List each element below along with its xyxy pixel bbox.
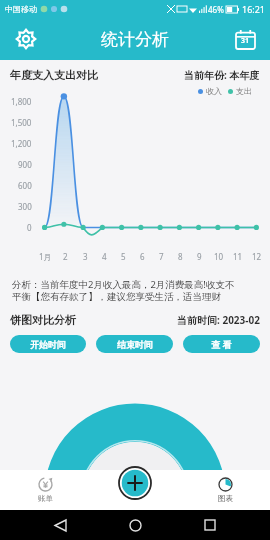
- staticText: 分析：当前年度中2月收入最高，2月消费最高!收支不: [12, 278, 235, 291]
- staticText: 图表: [218, 494, 233, 503]
- button[interactable]: 查 看: [183, 335, 260, 353]
- staticText: 12: [252, 251, 262, 262]
- button[interactable]: 结束时间: [96, 335, 173, 353]
- staticText: 结束时间: [117, 339, 153, 350]
- staticText: 当前时间: 2023-02: [177, 313, 260, 327]
- button[interactable]: Calendar: [230, 24, 260, 54]
- staticText: 1,800: [11, 96, 32, 107]
- staticText: 开始时间: [30, 339, 66, 350]
- staticText: 46%: [208, 4, 224, 15]
- staticText: 11: [233, 251, 243, 262]
- staticText: 1,500: [11, 117, 32, 128]
- staticText: 年度支入支出对比: [10, 68, 98, 82]
- staticText: 1,200: [11, 138, 32, 149]
- staticText: 31: [241, 36, 250, 46]
- staticText: 8: [178, 251, 183, 262]
- staticText: 查 看: [211, 338, 232, 350]
- button[interactable]: Settings: [10, 23, 42, 55]
- staticText: 2: [63, 251, 68, 262]
- staticText: 账单: [38, 494, 53, 503]
- staticText: 5: [121, 251, 126, 262]
- staticText: 6: [140, 251, 145, 262]
- staticText: 收入: [206, 86, 222, 96]
- staticText: 7: [159, 251, 164, 262]
- button[interactable]: Add: [118, 466, 152, 500]
- staticText: 0: [27, 222, 32, 233]
- staticText: 1月: [39, 251, 52, 262]
- button[interactable]: Back: [45, 510, 75, 540]
- staticText: 10: [214, 251, 224, 262]
- button[interactable]: Home: [120, 510, 150, 540]
- staticText: 3: [83, 251, 88, 262]
- staticText: 600: [18, 180, 32, 191]
- staticText: 平衡【您有存款了】，建议您享受生活，适当理财: [12, 291, 221, 303]
- staticText: 支出: [236, 86, 252, 96]
- staticText: 300: [18, 201, 32, 212]
- staticText: 16:21: [242, 3, 266, 15]
- button[interactable]: Recents: [195, 510, 225, 540]
- button[interactable]: 账单: [0, 470, 90, 510]
- staticText: 当前年份: 本年度: [184, 68, 260, 82]
- staticText: 4: [102, 251, 107, 262]
- staticText: 统计分析: [101, 29, 169, 50]
- staticText: 饼图对比分析: [10, 313, 76, 327]
- staticText: 中国移动: [5, 4, 37, 14]
- button[interactable]: 图表: [180, 470, 270, 510]
- staticText: 9: [197, 251, 202, 262]
- staticText: 900: [18, 159, 32, 170]
- button[interactable]: 开始时间: [10, 335, 86, 353]
